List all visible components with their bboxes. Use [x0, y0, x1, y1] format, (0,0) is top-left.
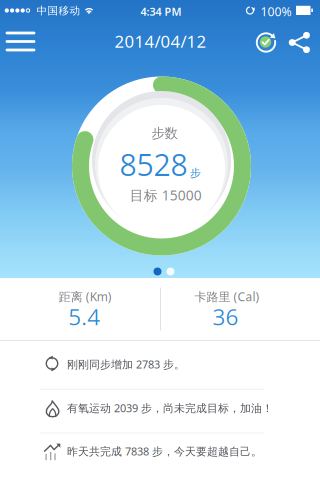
staticText: 刚刚同步增加 2783 步。 [67, 357, 185, 372]
button[interactable]: Menu [5, 29, 36, 54]
staticText: 昨天共完成 7838 步，今天要超越自己。 [67, 444, 262, 459]
staticText: 2014/04/12 [114, 30, 206, 53]
button[interactable]: 昨天共完成 7838 步，今天要超越自己。 [0, 430, 320, 473]
staticText: 5.4 [68, 301, 100, 332]
staticText: 步数 [151, 125, 177, 142]
staticText: 步 [190, 166, 201, 180]
staticText: 卡路里 (Cal) [194, 288, 259, 305]
button[interactable]: 卡路里 (Cal) [155, 281, 295, 333]
staticText: 100% [260, 3, 291, 20]
staticText: 4:34 PM [140, 4, 181, 19]
staticText: 目标 15000 [130, 186, 202, 204]
button[interactable]: 刚刚同步增加 2783 步。 [0, 343, 320, 386]
button[interactable]: 距离 (Km) [14, 281, 154, 333]
staticText: 36 [213, 301, 239, 332]
staticText: 8528 [119, 144, 187, 185]
button[interactable]: 有氧运动 2039 步，尚未完成目标，加油！ [0, 386, 320, 429]
button[interactable]: Share [289, 30, 311, 54]
staticText: 距离 (Km) [59, 288, 112, 305]
button[interactable]: Sync [253, 29, 279, 55]
staticText: 有氧运动 2039 步，尚未完成目标，加油！ [67, 400, 273, 415]
staticText: 中国移动 [36, 4, 80, 17]
